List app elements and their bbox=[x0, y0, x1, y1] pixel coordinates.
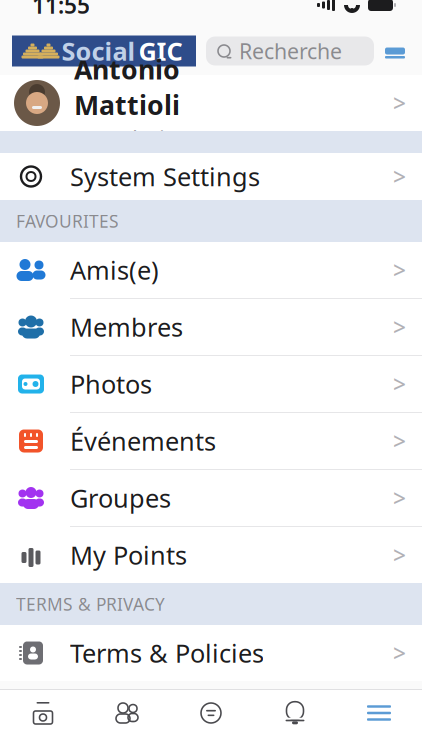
staticText: > bbox=[393, 426, 406, 456]
staticText: > bbox=[393, 540, 406, 570]
staticText: > bbox=[393, 369, 406, 399]
staticText: My Points bbox=[70, 538, 187, 572]
staticText: Antonio Mattioli bbox=[74, 51, 180, 122]
staticText: Membres bbox=[70, 310, 183, 344]
staticText: @tradetiger bbox=[74, 124, 201, 154]
button[interactable]: Photos bbox=[0, 356, 422, 412]
staticText: Groupes bbox=[70, 481, 171, 515]
staticText: 11:55 bbox=[32, 0, 90, 20]
staticText: > bbox=[393, 638, 406, 668]
staticText: Recherche bbox=[239, 37, 342, 65]
staticText: GIC bbox=[138, 34, 182, 68]
button[interactable]: Home bbox=[1, 690, 85, 736]
staticText: > bbox=[393, 255, 406, 285]
button[interactable]: Compose bbox=[382, 40, 408, 62]
staticText: Amis(e) bbox=[70, 253, 159, 287]
button[interactable]: Événements bbox=[0, 413, 422, 469]
staticText: TERMS & PRIVACY bbox=[16, 592, 165, 615]
button[interactable]: Social bbox=[12, 35, 196, 66]
button[interactable]: Amis(e) bbox=[0, 242, 422, 298]
button[interactable]: Messages bbox=[169, 690, 253, 736]
staticText: Photos bbox=[70, 367, 152, 401]
button[interactable]: Notifications bbox=[253, 690, 337, 736]
button[interactable]: People bbox=[85, 690, 169, 736]
button[interactable]: Membres bbox=[0, 299, 422, 355]
staticText: Événements bbox=[70, 424, 216, 458]
button[interactable]: Antonio Mattioli bbox=[0, 75, 422, 131]
button[interactable]: My Points bbox=[0, 527, 422, 583]
staticText: > bbox=[393, 312, 406, 342]
button[interactable]: Menu bbox=[337, 690, 421, 736]
staticText: > bbox=[393, 483, 406, 513]
button[interactable]: Terms & Policies bbox=[0, 625, 422, 681]
button[interactable]: Groupes bbox=[0, 470, 422, 526]
staticText: FAVOURITES bbox=[16, 209, 119, 232]
button[interactable]: Recherche bbox=[206, 36, 374, 65]
staticText: > bbox=[393, 161, 406, 191]
staticText: > bbox=[393, 88, 406, 118]
staticText: Terms & Policies bbox=[70, 636, 264, 670]
staticText: Social bbox=[61, 34, 135, 68]
staticText: System Settings bbox=[70, 160, 260, 193]
button[interactable]: System Settings bbox=[0, 153, 422, 200]
